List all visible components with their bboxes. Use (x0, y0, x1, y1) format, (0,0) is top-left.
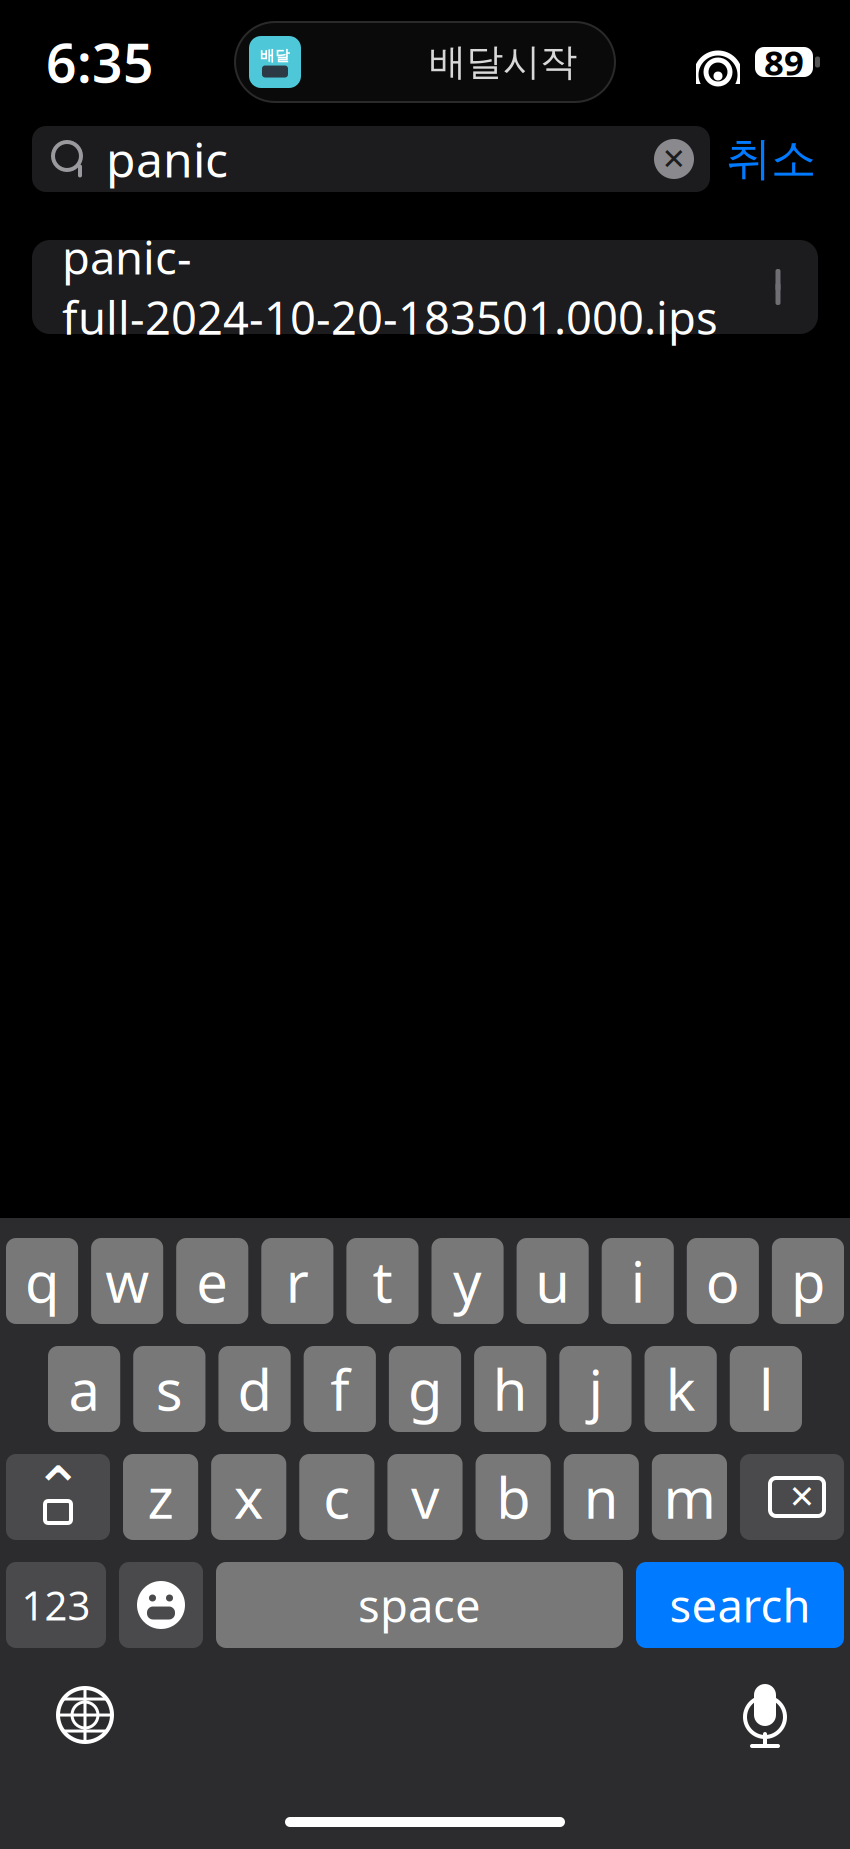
button[interactable]: h (474, 1346, 546, 1432)
button[interactable]: a (48, 1346, 120, 1432)
button[interactable]: Emoji (119, 1562, 203, 1648)
staticText: k (666, 1352, 696, 1426)
staticText: s (156, 1352, 183, 1426)
button[interactable]: 123 (6, 1562, 106, 1648)
button[interactable]: Delete (740, 1454, 844, 1540)
staticText: ⌃ (32, 1454, 83, 1524)
button[interactable]: v (387, 1454, 462, 1540)
staticText: g (408, 1352, 442, 1426)
staticText: a (69, 1352, 100, 1426)
button[interactable]: k (645, 1346, 717, 1432)
button[interactable]: q (6, 1238, 78, 1324)
button[interactable]: Dictation (720, 1670, 810, 1760)
staticText: d (238, 1352, 272, 1426)
staticText: q (25, 1244, 59, 1318)
button[interactable]: u (517, 1238, 589, 1324)
staticText: n (584, 1460, 619, 1534)
button[interactable]: Change keyboard (40, 1670, 130, 1760)
staticText: 취소 (726, 131, 816, 187)
staticText: ✕ (788, 1479, 815, 1515)
button[interactable]: panic-full-2024-10-20-183501.000.ips (32, 240, 818, 334)
button[interactable]: space (216, 1562, 623, 1648)
button[interactable]: g (389, 1346, 461, 1432)
button[interactable]: r (261, 1238, 333, 1324)
staticText: j (588, 1352, 602, 1426)
staticText: 배달 (260, 46, 290, 64)
staticText: 배달시작 (429, 39, 577, 85)
button[interactable]: t (346, 1238, 418, 1324)
button[interactable]: y (431, 1238, 504, 1324)
staticText: m (663, 1460, 715, 1534)
button[interactable]: search (636, 1562, 844, 1648)
staticText: v (411, 1460, 439, 1534)
staticText: search (669, 1575, 810, 1635)
staticText: o (706, 1244, 740, 1318)
staticText: x (234, 1460, 264, 1534)
button[interactable]: p (772, 1238, 844, 1324)
staticText: u (535, 1244, 570, 1318)
staticText: 6:35 (46, 27, 154, 97)
staticText: ✕ (661, 142, 686, 176)
button[interactable]: d (218, 1346, 291, 1432)
staticText: r (286, 1244, 309, 1318)
button[interactable]: l (730, 1346, 802, 1432)
staticText: h (493, 1352, 528, 1426)
button[interactable]: m (652, 1454, 727, 1540)
button[interactable]: b (476, 1454, 551, 1540)
staticText: e (196, 1244, 228, 1318)
button[interactable]: f (304, 1346, 376, 1432)
button[interactable]: z (123, 1454, 198, 1540)
button[interactable]: Shift (6, 1454, 110, 1540)
staticText: panic (106, 127, 228, 191)
button[interactable]: Clear text (654, 139, 710, 179)
button[interactable]: o (687, 1238, 759, 1324)
staticText: i (631, 1244, 645, 1318)
button[interactable]: x (211, 1454, 286, 1540)
button[interactable]: 취소 (710, 126, 832, 192)
staticText: c (323, 1460, 350, 1534)
staticText: space (358, 1575, 481, 1635)
staticText: 123 (21, 1578, 90, 1631)
button[interactable]: w (91, 1238, 163, 1324)
staticText: b (496, 1460, 530, 1534)
button[interactable]: c (299, 1454, 374, 1540)
staticText: w (105, 1244, 149, 1318)
staticText: f (330, 1352, 349, 1426)
staticText: panic-full-2024-10-20-183501.000.ips (62, 227, 718, 347)
button[interactable]: i (602, 1238, 674, 1324)
staticText: p (791, 1244, 825, 1318)
staticText: l (759, 1352, 773, 1426)
button[interactable]: j (559, 1346, 631, 1432)
button[interactable]: s (133, 1346, 205, 1432)
staticText: 89 (764, 39, 804, 85)
staticText: t (372, 1244, 392, 1318)
button[interactable]: e (176, 1238, 248, 1324)
staticText: y (453, 1244, 482, 1318)
staticText: z (148, 1460, 174, 1534)
button[interactable]: n (564, 1454, 639, 1540)
